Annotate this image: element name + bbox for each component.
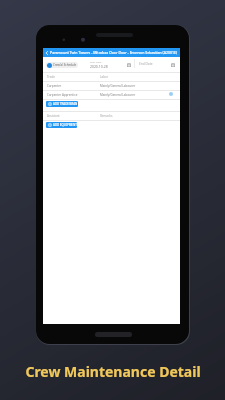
button[interactable]: Back bbox=[43, 48, 180, 57]
staticText: Carpenter bbox=[47, 84, 62, 88]
button[interactable]: ADD EQUIPMENT bbox=[46, 122, 77, 128]
staticText: Carpenter Apprentice bbox=[47, 93, 78, 97]
staticText: Mainly/General Labourer bbox=[100, 93, 136, 97]
button[interactable]: Pick date bbox=[127, 63, 131, 67]
staticText: Start Date bbox=[90, 60, 102, 63]
staticText: Crew Maintenance Detail bbox=[25, 362, 201, 381]
button[interactable]: Crew(s) Schedule bbox=[46, 62, 78, 68]
staticText: Assistant bbox=[47, 114, 60, 118]
button[interactable]: ADD TRADESMAN bbox=[46, 101, 78, 107]
staticText: Mainly/General Labourer bbox=[100, 84, 136, 88]
other: Back bbox=[45, 51, 49, 55]
staticText: ADD EQUIPMENT bbox=[53, 123, 77, 127]
staticText: Remarks bbox=[100, 114, 113, 118]
staticText: Labor bbox=[100, 75, 109, 79]
staticText: ADD TRADESMAN bbox=[53, 102, 78, 106]
staticText: 2020-10-28 bbox=[90, 64, 108, 69]
staticText: Trade bbox=[47, 75, 55, 79]
button[interactable]: Pick date bbox=[171, 63, 175, 67]
staticText: Paramount Twin Towers - Mitrabaa Door Do… bbox=[50, 50, 177, 55]
staticText: Crew(s) Schedule bbox=[53, 63, 77, 67]
staticText: End Date bbox=[139, 62, 153, 66]
button[interactable]: Info bbox=[169, 92, 173, 96]
